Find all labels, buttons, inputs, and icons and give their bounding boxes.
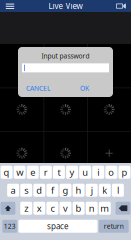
button[interactable] [87, 131, 131, 175]
button[interactable]: v [59, 202, 71, 215]
staticText: a [11, 184, 16, 196]
button[interactable]: New camera [111, 0, 131, 12]
button[interactable]: w [14, 166, 26, 179]
button[interactable]: f [46, 184, 58, 197]
staticText: y [69, 166, 74, 178]
button[interactable]: a [7, 184, 19, 197]
staticText: s [24, 184, 28, 196]
staticText: k [102, 184, 107, 196]
button[interactable]: c [46, 202, 58, 215]
button[interactable]: n [86, 202, 98, 215]
button[interactable] [44, 44, 87, 88]
button[interactable]: p [118, 166, 130, 179]
button[interactable]: s [20, 184, 32, 197]
staticText: g [62, 184, 68, 196]
button[interactable]: return [99, 220, 129, 233]
staticText: return [104, 222, 124, 231]
button[interactable]: m [99, 202, 111, 215]
staticText: d [36, 184, 42, 196]
staticText: h [76, 184, 82, 196]
staticText: 123 [4, 222, 16, 231]
staticText: v [63, 202, 68, 214]
button[interactable] [87, 44, 131, 88]
button[interactable]: d [33, 184, 45, 197]
button[interactable]: space [18, 220, 97, 233]
button[interactable]: CANCEL [24, 82, 53, 94]
staticText: u [82, 166, 88, 178]
staticText: p [121, 166, 127, 178]
button[interactable]: e [27, 166, 39, 179]
button[interactable]: h [73, 184, 84, 197]
button[interactable]: r [40, 166, 52, 179]
button[interactable]: t [53, 166, 65, 179]
button[interactable]: Shift [0, 202, 15, 215]
staticText: CANCEL [26, 84, 51, 92]
staticText: i [97, 166, 99, 178]
staticText: x [37, 202, 42, 214]
button[interactable]: Menu [0, 0, 20, 12]
button[interactable]: x [33, 202, 45, 215]
staticText: space [47, 221, 69, 231]
button[interactable]: OK [78, 82, 91, 94]
button[interactable]: o [105, 166, 117, 179]
staticText: Input password [41, 51, 89, 60]
button[interactable]: q [1, 166, 12, 179]
button[interactable] [44, 131, 87, 175]
button[interactable] [0, 131, 44, 175]
button[interactable]: z [20, 202, 32, 215]
staticText: z [24, 202, 28, 214]
staticText: o [108, 166, 114, 178]
button[interactable]: j [86, 184, 98, 197]
staticText: q [3, 166, 9, 178]
button[interactable] [87, 88, 131, 131]
staticText: l [117, 184, 119, 196]
button[interactable]: l [112, 184, 124, 197]
button[interactable]: g [59, 184, 71, 197]
staticText: c [50, 202, 54, 214]
staticText: r [44, 166, 48, 178]
button[interactable] [0, 88, 44, 131]
staticText: j [91, 184, 93, 196]
button[interactable]: Delete [115, 202, 130, 215]
button[interactable]: 123 [2, 220, 17, 233]
staticText: m [100, 202, 109, 214]
staticText: e [30, 166, 35, 178]
button[interactable]: u [79, 166, 91, 179]
button[interactable]: i [92, 166, 104, 179]
staticText: b [76, 202, 82, 214]
staticText: n [89, 202, 95, 214]
staticText: w [16, 166, 23, 178]
staticText: Live View [48, 1, 82, 11]
staticText: OK [80, 84, 89, 92]
button[interactable] [44, 88, 87, 131]
staticText: f [51, 184, 54, 196]
button[interactable]: k [99, 184, 111, 197]
button[interactable] [0, 44, 44, 88]
button[interactable]: b [73, 202, 84, 215]
button[interactable]: y [66, 166, 78, 179]
staticText: t [57, 166, 60, 178]
